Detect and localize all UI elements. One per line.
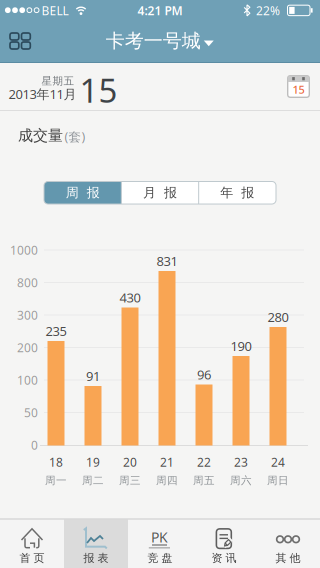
staticText: 430 bbox=[119, 289, 140, 306]
staticText: 星期五 bbox=[41, 74, 74, 88]
button[interactable]: 卡考一号城 bbox=[106, 29, 214, 53]
staticText: 周五 bbox=[193, 474, 215, 487]
staticText: 20 bbox=[123, 454, 137, 470]
staticText: 周一 bbox=[45, 474, 67, 487]
button[interactable]: 年 报 bbox=[199, 181, 276, 204]
staticText: 22 bbox=[197, 454, 211, 470]
staticText: 资 讯 bbox=[211, 551, 236, 565]
staticText: 1000 bbox=[10, 242, 38, 258]
button[interactable]: 资 讯 bbox=[192, 519, 256, 568]
staticText: 235 bbox=[45, 322, 66, 340]
staticText: (套) bbox=[64, 128, 85, 145]
staticText: 18 bbox=[49, 454, 63, 470]
staticText: 其 他 bbox=[275, 551, 300, 565]
staticText: 800 bbox=[17, 274, 38, 291]
staticText: BELL bbox=[41, 2, 68, 19]
staticText: 0 bbox=[31, 437, 38, 453]
button[interactable]: 月 报 bbox=[121, 181, 199, 204]
staticText: 91 bbox=[86, 367, 100, 385]
staticText: 竞 盘 bbox=[147, 551, 172, 565]
staticText: 周二 bbox=[82, 474, 104, 487]
staticText: 年 报 bbox=[220, 185, 254, 201]
staticText: 15 bbox=[79, 67, 117, 112]
staticText: 23 bbox=[234, 454, 248, 470]
button[interactable]: 首 页 bbox=[0, 519, 64, 568]
staticText: 96 bbox=[197, 366, 211, 383]
staticText: 831 bbox=[156, 252, 177, 270]
staticText: 190 bbox=[230, 337, 251, 355]
staticText: 19 bbox=[86, 454, 100, 470]
button[interactable]: 其 他 bbox=[256, 519, 320, 568]
staticText: 月 报 bbox=[143, 185, 177, 201]
staticText: 周六 bbox=[230, 474, 252, 487]
button[interactable]: 周 报 bbox=[44, 181, 121, 204]
staticText: 周日 bbox=[267, 474, 289, 487]
button[interactable]: 报 表 bbox=[64, 519, 128, 568]
staticText: 周 报 bbox=[66, 185, 100, 201]
button[interactable]: PK bbox=[128, 519, 192, 568]
staticText: 首 页 bbox=[19, 551, 44, 565]
staticText: 100 bbox=[17, 372, 38, 388]
staticText: 2013年11月 bbox=[8, 85, 76, 103]
staticText: 报 表 bbox=[83, 551, 108, 565]
staticText: 21 bbox=[160, 454, 174, 470]
staticText: 300 bbox=[17, 307, 38, 323]
staticText: 周三 bbox=[119, 474, 141, 487]
staticText: PK bbox=[151, 527, 168, 547]
staticText: 24 bbox=[271, 454, 285, 470]
button[interactable]: 选择日期 bbox=[287, 75, 310, 98]
staticText: 50 bbox=[24, 404, 38, 421]
staticText: 4:21 PM bbox=[137, 2, 182, 19]
staticText: 周四 bbox=[156, 474, 178, 487]
staticText: 卡考一号城 bbox=[106, 29, 201, 53]
staticText: 15 bbox=[292, 82, 304, 97]
staticText: 22% bbox=[256, 2, 280, 19]
staticText: 200 bbox=[17, 339, 38, 356]
staticText: 280 bbox=[267, 308, 288, 326]
button[interactable]: 应用菜单 bbox=[9, 32, 32, 51]
staticText: 成交量 bbox=[18, 126, 63, 145]
